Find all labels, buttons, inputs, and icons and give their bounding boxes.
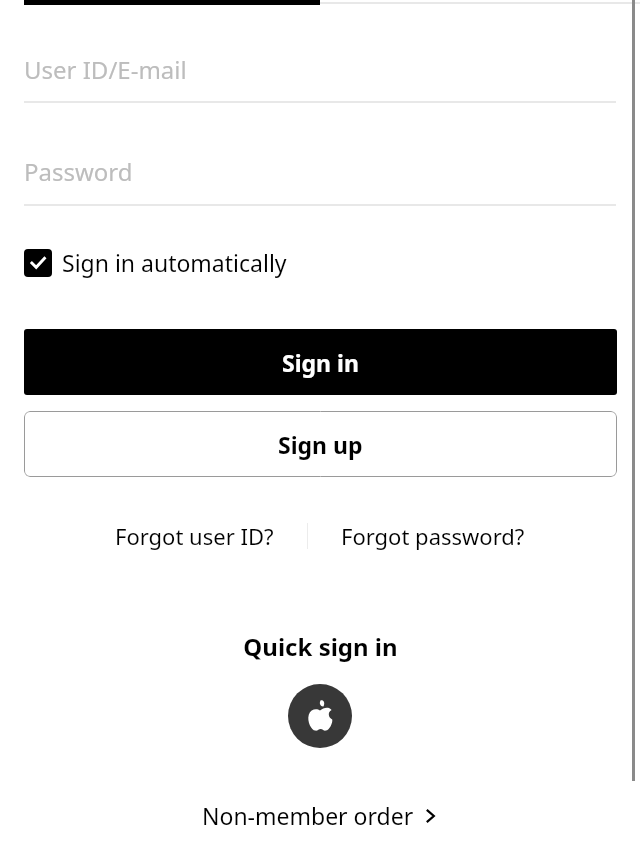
staticText: Password — [24, 155, 133, 188]
button[interactable]: Non-member order — [0, 800, 640, 831]
staticText: Sign in — [282, 347, 359, 378]
staticText: Forgot password? — [341, 521, 525, 551]
button[interactable]: User ID/E-mail — [24, 5, 616, 103]
button[interactable]: Sign in automatically — [24, 247, 287, 278]
button[interactable]: Sign in — [24, 329, 617, 395]
button[interactable]: Password — [24, 103, 616, 206]
staticText: Sign up — [278, 429, 363, 460]
staticText: Sign in automatically — [62, 247, 287, 278]
button[interactable]: Sign up — [24, 411, 617, 477]
button[interactable]: Forgot password? — [341, 521, 525, 551]
button[interactable]: Forgot user ID? — [115, 521, 274, 551]
staticText: User ID/E-mail — [24, 53, 187, 86]
button[interactable]: Sign in with Apple — [288, 684, 352, 748]
staticText: Quick sign in — [243, 630, 398, 663]
staticText: Non-member order — [202, 800, 414, 831]
staticText: Forgot user ID? — [115, 521, 274, 551]
